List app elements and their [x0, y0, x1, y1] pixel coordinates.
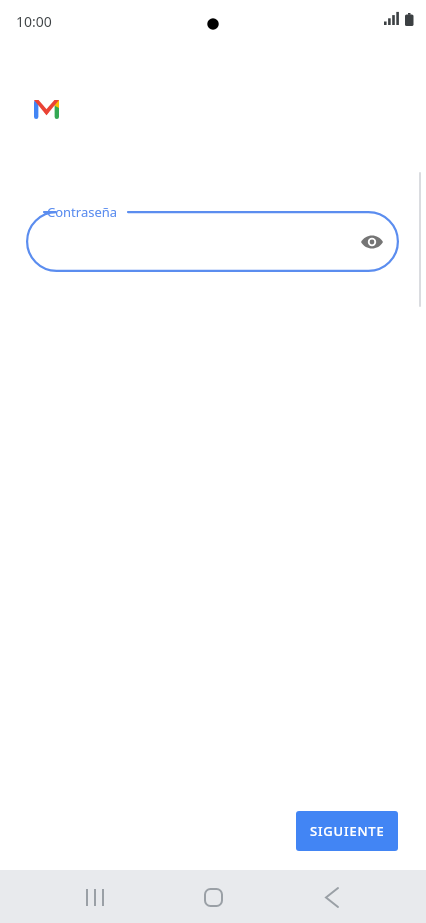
button[interactable]: SIGUIENTE	[296, 811, 398, 851]
staticText: SIGUIENTE	[310, 822, 385, 840]
button[interactable]: Atrás	[308, 873, 356, 921]
button[interactable]: Recientes	[71, 873, 119, 921]
staticText: Contraseña	[47, 203, 118, 221]
staticText: 10:00	[16, 12, 52, 31]
button[interactable]: Mostrar contraseña	[356, 226, 388, 258]
button[interactable]	[26, 211, 399, 272]
button[interactable]: Inicio	[189, 873, 237, 921]
